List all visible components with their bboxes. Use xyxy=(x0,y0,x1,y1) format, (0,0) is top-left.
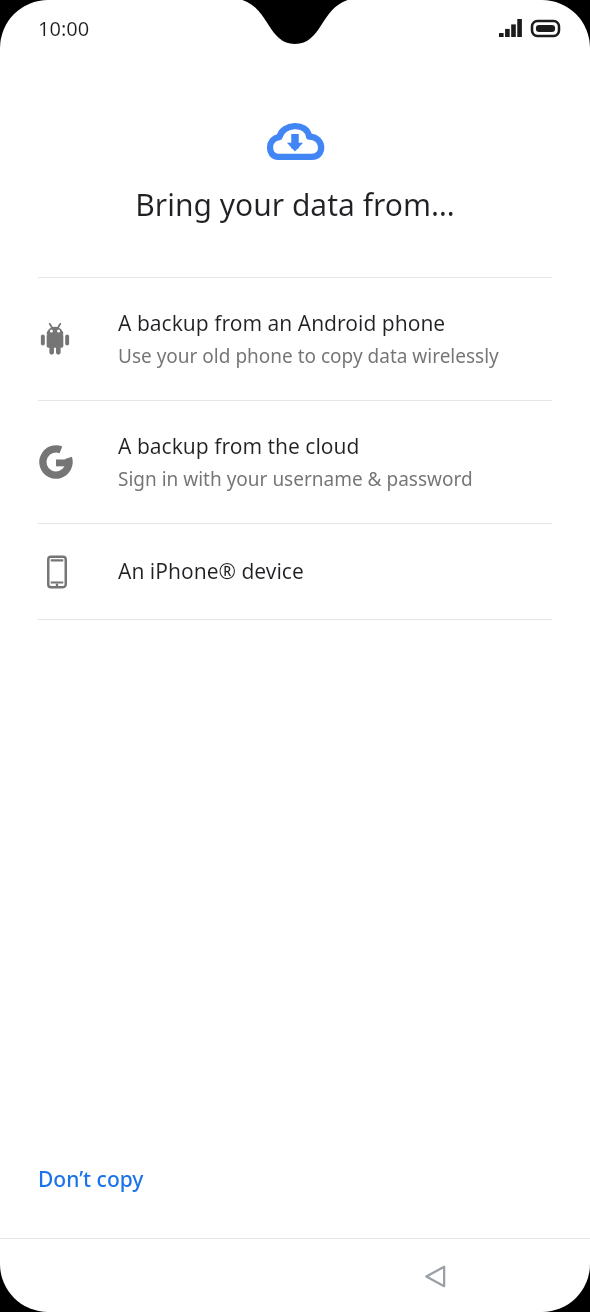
staticText: An iPhone® device xyxy=(118,557,304,586)
staticText: Bring your data from… xyxy=(20,184,570,225)
button[interactable]: A backup from an Android phone xyxy=(0,278,590,400)
staticText: Use your old phone to copy data wireless… xyxy=(118,343,499,369)
staticText: 10:00 xyxy=(38,15,90,42)
staticText: Don’t copy xyxy=(38,1165,144,1194)
staticText: A backup from an Android phone xyxy=(118,309,446,338)
button[interactable]: A backup from the cloud xyxy=(0,401,590,523)
button[interactable]: Don’t copy xyxy=(24,1153,158,1206)
staticText: Sign in with your username & password xyxy=(118,466,473,492)
staticText: A backup from the cloud xyxy=(118,432,360,461)
button[interactable]: Back xyxy=(411,1252,459,1300)
button[interactable]: An iPhone® device xyxy=(0,524,590,619)
